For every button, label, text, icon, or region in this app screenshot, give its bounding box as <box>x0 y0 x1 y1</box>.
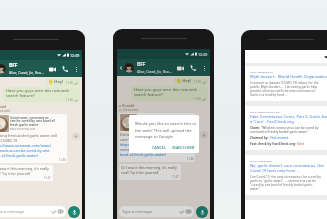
staticText: Can Covid-19, the new coronavirus, be cu… <box>250 175 321 179</box>
staticText: Forwarded <box>0 109 11 113</box>
staticText: garlic or "garlic water" ... coronavirus… <box>250 179 316 183</box>
staticText: https://snopes.com <box>250 159 272 162</box>
staticText: https://www.who.int <box>250 70 273 73</box>
staticText: CANCEL <box>152 145 166 150</box>
button[interactable]: Call <box>189 64 197 72</box>
button[interactable]: Call <box>61 65 69 73</box>
button[interactable]: Scroll to bottom <box>200 131 208 139</box>
button[interactable]: SEARCH WEB <box>171 144 196 151</box>
staticText: SEARCH WEB <box>172 145 195 150</box>
staticText: Garlic is a healthy food ... <box>250 93 288 97</box>
button[interactable]: Video call <box>48 65 56 73</box>
staticText: water". <box>250 187 261 191</box>
staticText: BFF <box>137 61 146 68</box>
button[interactable]: https://www.factcheck.org <box>250 110 327 146</box>
staticText: Good news, coronavirus can be cured by o… <box>138 114 183 126</box>
staticText: 12:30 <box>70 53 80 58</box>
other: Camera <box>58 209 63 214</box>
staticText: n Ronald <box>119 103 135 108</box>
staticText: 12:30 <box>198 52 208 57</box>
button[interactable]: Type a message <box>122 206 191 217</box>
button[interactable]: CANCEL <box>151 144 167 151</box>
button[interactable]: https://www.who.int <box>250 70 327 97</box>
button[interactable]: https://snopes.com <box>250 159 327 191</box>
staticText: 😊 I saw it this morning, it's really coo… <box>0 166 49 176</box>
staticText: Have you guys seen this new web search f… <box>134 87 197 97</box>
staticText: Have you guys seen this new web search f… <box>6 88 69 98</box>
button[interactable]: More options <box>72 65 80 73</box>
button[interactable]: Video call <box>176 64 184 72</box>
staticText: Fake Coronavirus Cures, Part 2: Garlic I… <box>250 114 327 124</box>
staticText: 11:46 <box>187 157 194 161</box>
staticText: Forwarded <box>123 108 139 112</box>
button[interactable]: Record voice message <box>68 206 80 218</box>
staticText: Type a message <box>0 209 25 214</box>
button[interactable]: Scroll to bottom <box>72 132 80 140</box>
button[interactable]: More options <box>200 64 208 72</box>
other: Attach <box>51 209 56 214</box>
staticText: 😊 I saw it this morning, it's really coo… <box>121 165 177 175</box>
button[interactable]: Type a message <box>0 206 63 217</box>
button[interactable]: Record voice message <box>196 206 208 218</box>
staticText: prevent infection with the new coronavir… <box>250 89 316 93</box>
staticText: https://www.coronews.com/news/ coronavir… <box>0 143 52 158</box>
staticText: Coronavirus disease (COVID-19) advice fo… <box>250 81 319 85</box>
staticText: Viral memes <box>269 136 289 140</box>
staticText: one bowl of freshly boiled garlic water" <box>250 130 309 134</box>
staticText: 11:47 <box>44 176 51 180</box>
staticText: Alice, Coooi, Jia, Rou... <box>9 70 44 75</box>
staticText: Alice, Coooi, Jia, Rou... <box>137 69 172 74</box>
staticText: Fact check by FactCheck.org: <box>250 142 296 146</box>
staticText: Claim: <box>250 126 260 130</box>
staticText: 👋 Hey! <box>176 78 192 84</box>
staticText: n Ronald <box>0 104 7 109</box>
staticText: www.coronews.com <box>138 126 164 130</box>
staticText: 👋 Hey! <box>48 79 64 85</box>
staticText: Good news, coronavirus can be cured by o… <box>10 115 55 127</box>
staticText: False <box>296 142 305 146</box>
staticText: 11:46 <box>59 158 66 162</box>
staticText: Drinking fresh-boiled garlic water will … <box>0 133 57 143</box>
staticText: public: Myth busters ... Can eating garl… <box>250 85 318 89</box>
staticText: 11:45 <box>66 81 73 85</box>
other: Attach <box>179 209 184 214</box>
other: Camera <box>186 209 191 214</box>
staticText: https://www.coronews.com/news/ coronavir… <box>120 142 180 157</box>
staticText: BFF <box>9 62 18 69</box>
staticText: 11:45 <box>66 98 73 102</box>
staticText: 11:47 <box>172 175 179 179</box>
staticText: 11:45 <box>194 80 201 84</box>
staticText: No, garlic doesn't cure coronavirus. Get… <box>250 163 324 173</box>
staticText: Type a message <box>122 209 153 214</box>
staticText: Myth busters - World Health Organization <box>250 74 327 79</box>
staticText: Would you like to search this on the web… <box>135 121 196 139</box>
staticText: www.coronews.com <box>10 127 36 131</box>
staticText: "Whoknit corona virus can be cured by <box>260 126 319 130</box>
staticText: Drinking fresh-boiled garlic water will … <box>120 132 185 142</box>
staticText: Claimed by: <box>250 136 269 140</box>
staticText: 11:45 <box>194 97 201 101</box>
staticText: https://www.factcheck.org <box>250 110 280 113</box>
staticText: "cured by one bowl of freshly boiled gar… <box>250 183 313 187</box>
